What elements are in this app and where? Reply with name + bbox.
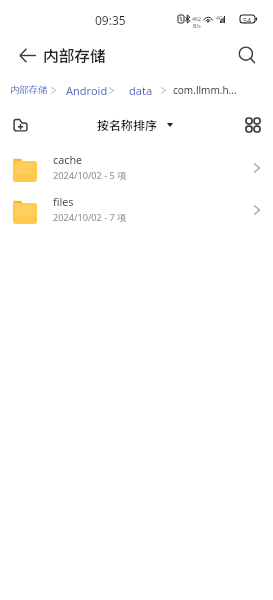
staticText: data <box>129 83 153 98</box>
staticText: 4G <box>216 14 223 21</box>
staticText: com.llmm.h... <box>173 83 237 97</box>
staticText: 内部存储 <box>43 44 106 67</box>
staticText: 内部存储 <box>10 84 48 96</box>
staticText: cache <box>53 152 83 167</box>
button[interactable]: com.llmm.h... <box>173 81 237 99</box>
staticText: 按名称排序 <box>97 116 158 133</box>
button[interactable]: 新建文件夹 <box>3 108 37 142</box>
staticText: 2024/10/02 - 5 项 <box>53 169 127 182</box>
staticText: 54 <box>243 15 252 23</box>
staticText: Android <box>66 83 108 98</box>
button[interactable]: files <box>0 191 273 232</box>
button[interactable]: Android <box>66 81 108 99</box>
staticText: B/s <box>193 22 201 29</box>
button[interactable]: 内部存储 <box>10 81 48 99</box>
button[interactable]: 搜索 <box>228 36 266 74</box>
staticText: 462 <box>192 15 201 22</box>
staticText: files <box>53 194 74 209</box>
button[interactable]: cache <box>0 149 273 190</box>
button[interactable]: 按名称排序 <box>97 116 173 133</box>
button[interactable]: 切换为网格视图 <box>238 110 268 140</box>
staticText: 09:35 <box>95 12 126 28</box>
staticText: 2024/10/02 - 7 项 <box>53 211 127 224</box>
button[interactable]: data <box>129 81 153 99</box>
button[interactable]: 返回 <box>7 35 47 75</box>
